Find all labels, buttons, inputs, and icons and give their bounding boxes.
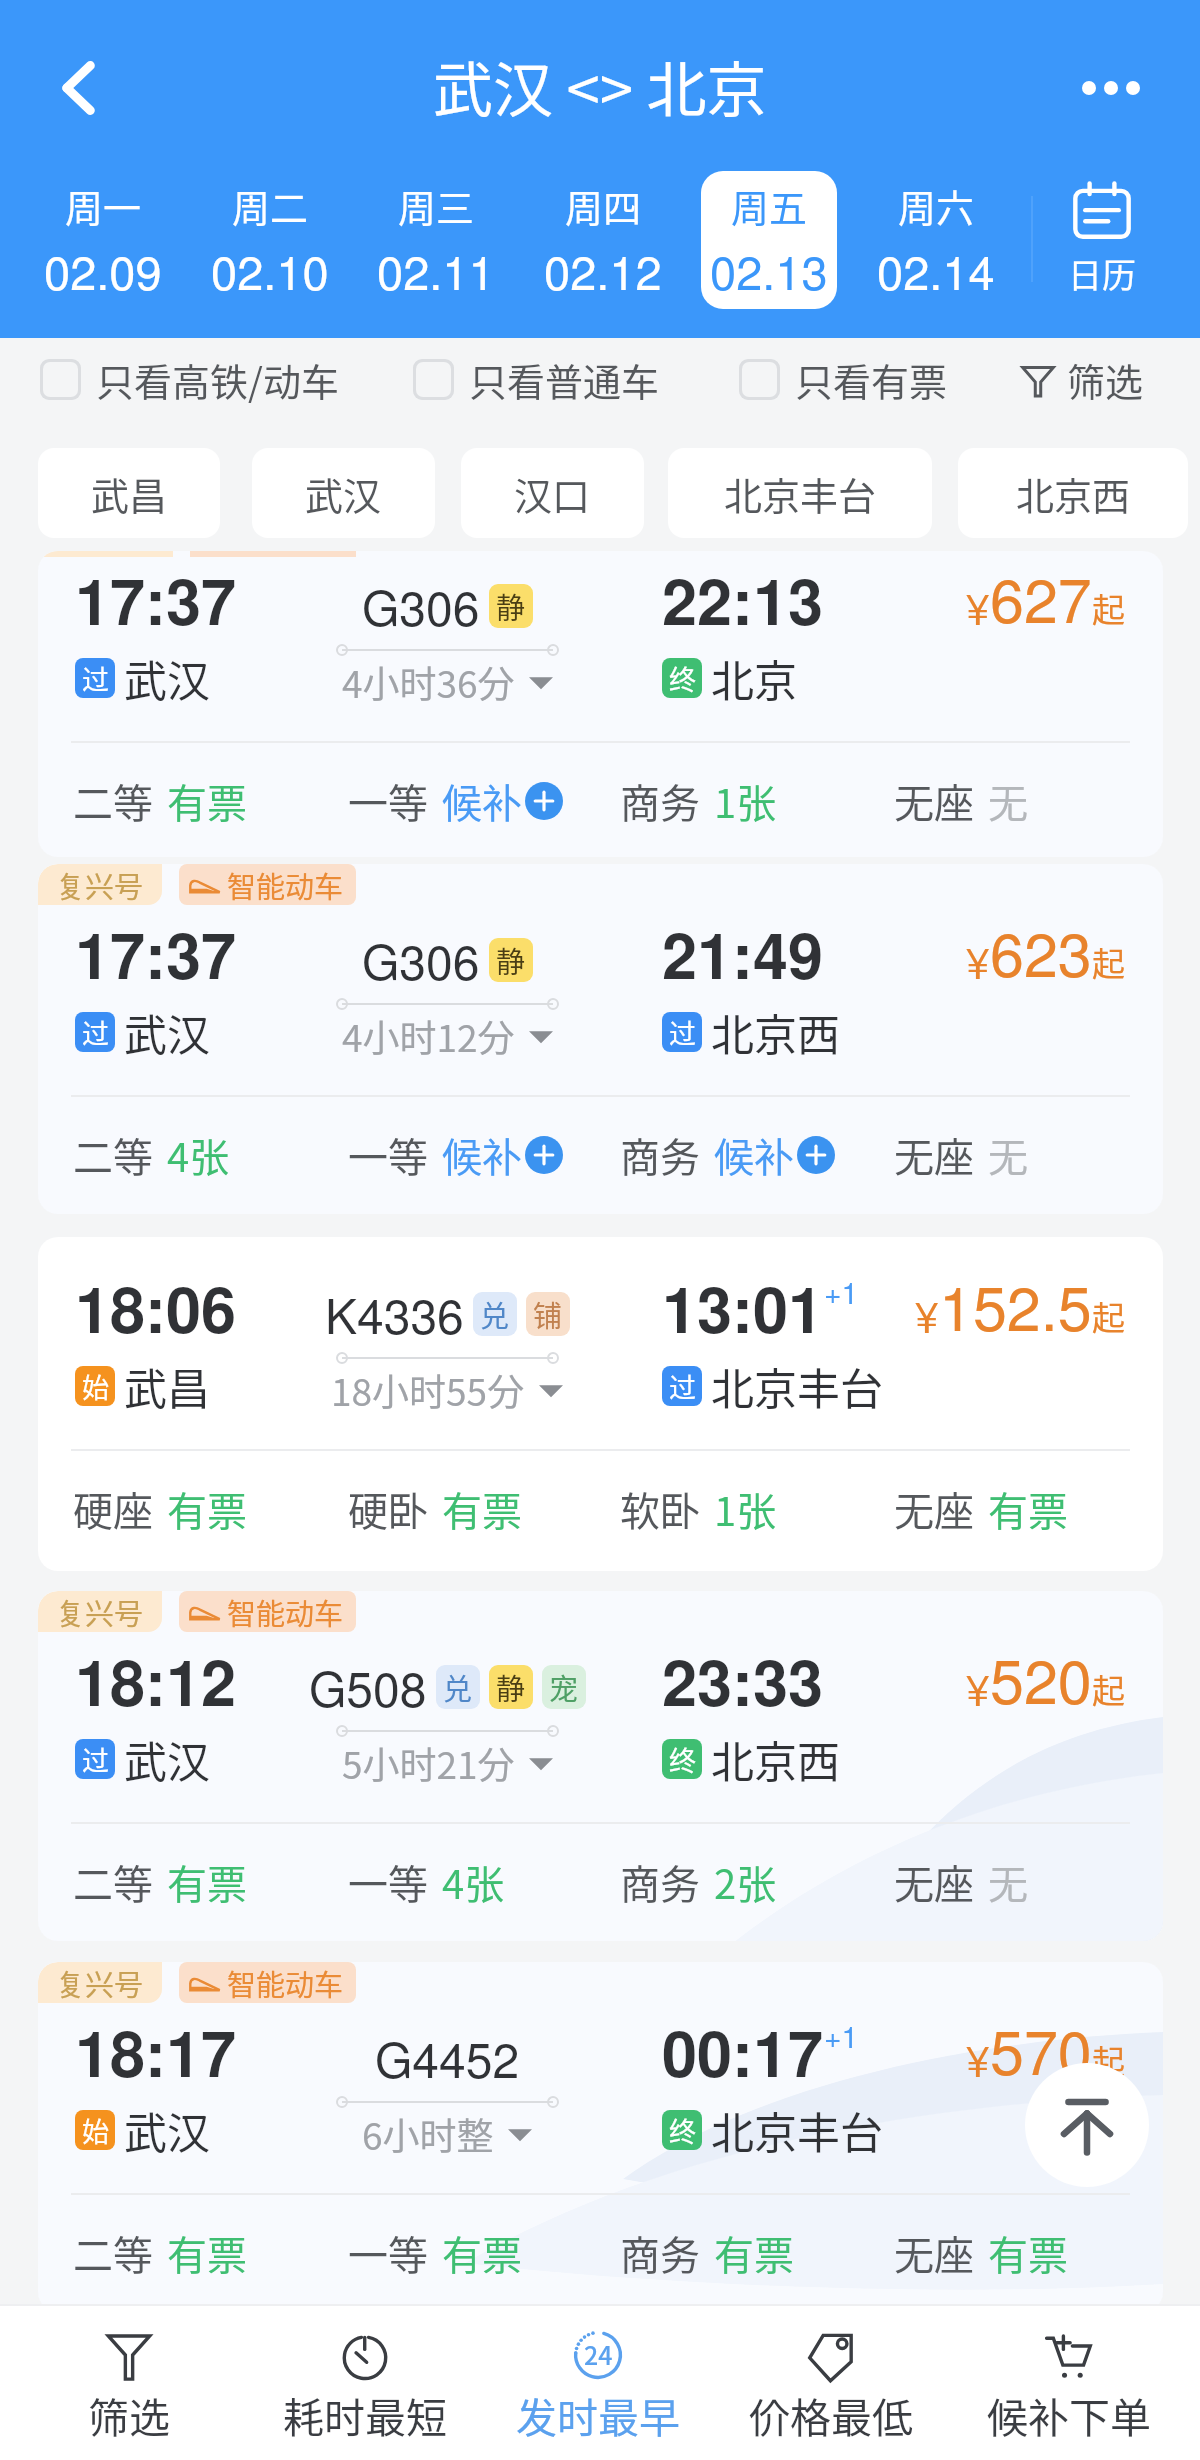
staticText: 候补下单 [987,2385,1151,2444]
staticText: 有票 [167,1853,247,1911]
staticText: 商务 [620,1126,700,1184]
staticText: 有票 [714,2224,794,2282]
staticText: 2张 [714,1853,777,1911]
staticText: 起 [1092,1292,1125,1340]
button[interactable]: 周五 [686,167,852,313]
staticText: 武汉 [124,1001,210,1063]
staticText: 无座 [894,1126,974,1184]
button[interactable]: 北京丰台 [668,448,932,538]
button[interactable]: 耗时最短 [250,2310,480,2460]
button[interactable]: 复兴号 [38,864,1163,1214]
staticText: G306 [362,925,480,994]
staticText: 4小时36分 [342,655,515,709]
button[interactable]: 候补下单 [954,2310,1184,2460]
staticText: 过 [82,1740,109,1779]
staticText: 有票 [167,2224,247,2282]
staticText: 627 [990,553,1092,640]
staticText: 武汉 [124,647,210,709]
button[interactable]: 周三 [353,167,519,313]
staticText: 二等 [73,1126,153,1184]
button[interactable]: 周二 [187,167,353,313]
staticText: 过 [82,659,109,698]
staticText: +1 [824,2014,859,2057]
button[interactable]: Calendar [1040,172,1164,306]
staticText: 570 [990,2005,1092,2092]
staticText: ¥ [915,1285,939,1345]
staticText: 终 [669,1740,696,1779]
button[interactable]: 17:37 [38,551,1163,857]
staticText: 静 [496,1666,526,1708]
staticText: 周四 [565,178,642,233]
staticText: 18小时55分 [331,1363,525,1417]
staticText: 武汉 [124,2099,210,2161]
staticText: 终 [669,659,696,698]
staticText: 02.12 [544,236,662,303]
staticText: 兑 [480,1293,510,1335]
button[interactable]: 武昌 [38,448,220,538]
staticText: 候补 [442,1126,522,1184]
staticText: 过 [669,1013,696,1052]
button[interactable]: 18:06 [38,1237,1163,1571]
staticText: 有票 [442,2224,522,2282]
button[interactable]: 价格最低 [716,2310,946,2460]
staticText: 筛选 [88,2385,170,2444]
staticText: 02.14 [877,236,995,303]
staticText: 周六 [898,178,975,233]
staticText: 无座 [894,2224,974,2282]
staticText: 一等 [348,1853,428,1911]
button[interactable]: 周六 [853,167,1019,313]
staticText: 00:17 [662,2006,824,2096]
staticText: 智能动车 [227,1591,344,1632]
staticText: 铺 [533,1293,563,1335]
staticText: 5小时21分 [342,1736,515,1790]
staticText: 发时最早 [516,2385,680,2444]
button[interactable]: 只看有票 [739,339,948,419]
staticText: K4336 [325,1279,464,1348]
staticText: 周一 [65,178,142,233]
staticText: 520 [990,1634,1092,1721]
button[interactable]: Scroll to top [1025,2063,1149,2187]
button[interactable]: 周一 [20,167,186,313]
staticText: ¥ [966,1658,990,1718]
button[interactable]: 复兴号 [38,1962,1163,2312]
staticText: 起 [1092,1665,1125,1713]
staticText: 北京丰台 [711,2099,883,2161]
staticText: 21:49 [662,908,824,998]
button[interactable]: Back [38,48,118,128]
staticText: 候补 [442,772,522,830]
staticText: 无 [988,772,1028,830]
staticText: 起 [1092,938,1125,986]
button[interactable]: 只看普通车 [413,339,660,419]
staticText: 一等 [348,1126,428,1184]
button[interactable]: 复兴号 [38,1591,1163,1941]
staticText: 武汉 [124,1728,210,1790]
button[interactable]: 筛选 [14,2310,244,2460]
staticText: 软卧 [620,1480,700,1538]
staticText: 无座 [894,1853,974,1911]
staticText: 有票 [167,772,247,830]
button[interactable]: 只看高铁/动车 [40,339,339,419]
staticText: 一等 [348,772,428,830]
staticText: 智能动车 [227,864,344,905]
staticText: 日历 [1068,249,1136,298]
button[interactable]: 24 [483,2310,713,2460]
staticText: 02.13 [710,236,828,303]
staticText: 24 [584,2336,613,2372]
staticText: 4小时12分 [342,1009,515,1063]
staticText: 北京西 [711,1001,840,1063]
staticText: 一等 [348,2224,428,2282]
staticText: 北京西 [711,1728,840,1790]
button[interactable]: 北京西 [958,448,1188,538]
staticText: 无座 [894,772,974,830]
button[interactable]: 汉口 [461,448,644,538]
staticText: 二等 [73,1853,153,1911]
staticText: 智能动车 [227,1962,344,2003]
button[interactable]: 周四 [520,167,686,313]
button[interactable]: More options [1071,48,1151,128]
button[interactable]: 筛选 [1021,339,1144,419]
staticText: 623 [990,907,1092,994]
button[interactable]: 武汉 [252,448,435,538]
staticText: G4452 [375,2023,520,2092]
staticText: G306 [362,571,480,640]
staticText: 周三 [398,178,475,233]
